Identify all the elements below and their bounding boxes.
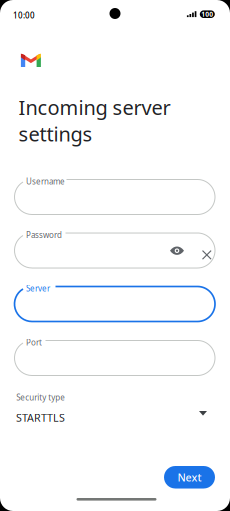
staticText: Server [26,283,50,294]
staticText: Next [177,470,201,484]
button[interactable]: Next [164,466,215,488]
button[interactable]: Choose security type [199,411,207,416]
staticText: 10:00 [13,10,35,21]
button[interactable]: Clear password [202,250,212,260]
staticText: Incoming server settings [18,94,170,147]
staticText: Password [26,229,62,240]
staticText: Security type [16,392,65,403]
staticText: Port [26,337,42,348]
button[interactable]: Show password [170,247,184,255]
staticText: 100 [201,10,213,19]
staticText: STARTTLS [16,410,65,425]
staticText: Username [26,176,65,187]
